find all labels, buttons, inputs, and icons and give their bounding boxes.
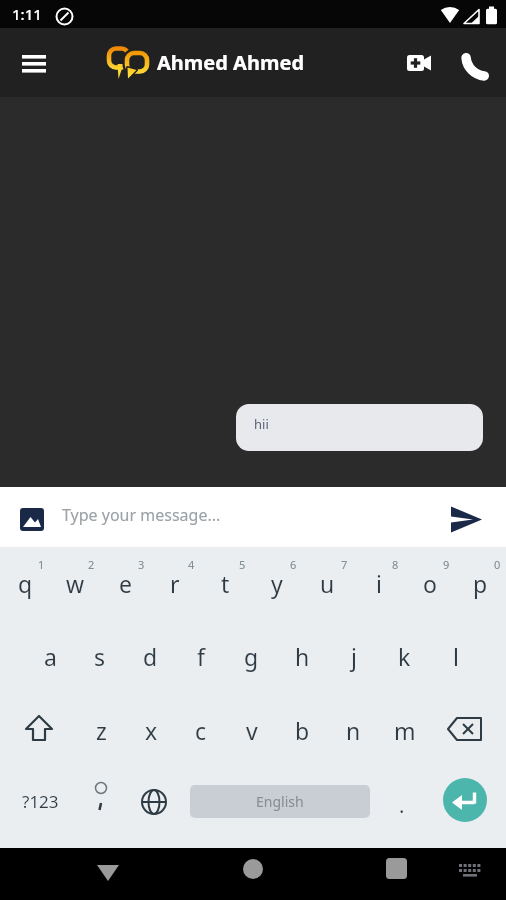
button[interactable] (376, 854, 416, 894)
staticText: m (394, 715, 416, 746)
staticText: r (170, 568, 180, 599)
staticText: 3 (138, 557, 145, 572)
button[interactable]: y (251, 557, 302, 609)
staticText: g (244, 641, 259, 672)
staticText: English (256, 792, 304, 811)
staticText: y (271, 568, 283, 599)
button[interactable] (443, 497, 491, 537)
staticText: k (398, 641, 411, 672)
staticText: 9 (443, 557, 450, 572)
button[interactable] (16, 708, 62, 752)
button[interactable]: f (175, 630, 226, 682)
button[interactable]: z (76, 704, 126, 756)
staticText: t (221, 568, 230, 599)
staticText: j (351, 641, 357, 672)
button[interactable] (398, 45, 440, 85)
staticText: hii (254, 415, 269, 433)
button[interactable] (233, 854, 273, 894)
button[interactable]: e (100, 557, 150, 609)
button[interactable]: u (302, 557, 353, 609)
button[interactable]: a (25, 630, 75, 682)
staticText: n (346, 715, 361, 746)
button[interactable]: o (404, 557, 455, 609)
button[interactable]: k (379, 630, 430, 682)
staticText: q (18, 568, 33, 599)
button[interactable]: . (386, 775, 418, 827)
staticText: 1:11 (12, 4, 42, 24)
staticText: 4 (188, 557, 195, 572)
staticText: x (145, 715, 158, 746)
button[interactable]: i (353, 557, 404, 609)
staticText: 2 (88, 557, 95, 572)
staticText: 7 (341, 557, 348, 572)
staticText: Type your message... (62, 504, 221, 526)
button[interactable]: d (125, 630, 175, 682)
staticText: l (453, 641, 459, 672)
button[interactable]: w (50, 557, 100, 609)
button[interactable]: r (150, 557, 200, 609)
button[interactable]: s (75, 630, 125, 682)
staticText: 1 (38, 557, 45, 572)
button[interactable] (88, 779, 114, 823)
button[interactable] (443, 778, 487, 822)
button[interactable]: v (226, 704, 277, 756)
staticText: u (320, 568, 335, 599)
staticText: 0 (494, 557, 501, 572)
staticText: w (66, 568, 85, 599)
button[interactable]: h (277, 630, 328, 682)
staticText: ?123 (22, 790, 59, 813)
staticText: a (44, 641, 57, 672)
button[interactable] (452, 856, 488, 892)
button[interactable]: q (0, 557, 50, 609)
staticText: o (423, 568, 437, 599)
staticText: e (119, 568, 132, 599)
button[interactable]: English (190, 785, 370, 818)
staticText: v (246, 715, 258, 746)
staticText: h (295, 641, 310, 672)
button[interactable]: l (430, 630, 481, 682)
staticText: 6 (290, 557, 297, 572)
button[interactable] (441, 708, 489, 752)
staticText: d (143, 641, 158, 672)
button[interactable] (138, 786, 170, 818)
staticText: . (399, 792, 405, 819)
button[interactable]: p (455, 557, 506, 609)
staticText: 5 (239, 557, 246, 572)
button[interactable]: ?123 (12, 775, 68, 827)
button[interactable]: n (328, 704, 379, 756)
button[interactable] (12, 500, 52, 536)
button[interactable]: j (328, 630, 379, 682)
staticText: f (197, 641, 205, 672)
button[interactable]: c (176, 704, 226, 756)
staticText: s (94, 641, 106, 672)
button[interactable] (455, 47, 499, 87)
button[interactable] (88, 854, 128, 894)
button[interactable] (14, 46, 54, 80)
button[interactable]: m (379, 704, 430, 756)
staticText: z (96, 715, 107, 746)
staticText: p (473, 568, 488, 599)
staticText: 8 (392, 557, 399, 572)
staticText: Ahmed Ahmed (157, 49, 305, 76)
staticText: b (295, 715, 310, 746)
button[interactable]: t (200, 557, 251, 609)
button[interactable]: x (126, 704, 176, 756)
button[interactable]: g (226, 630, 277, 682)
staticText: c (195, 715, 207, 746)
button[interactable]: hii (236, 404, 483, 451)
button[interactable]: b (277, 704, 328, 756)
staticText: i (376, 568, 382, 599)
